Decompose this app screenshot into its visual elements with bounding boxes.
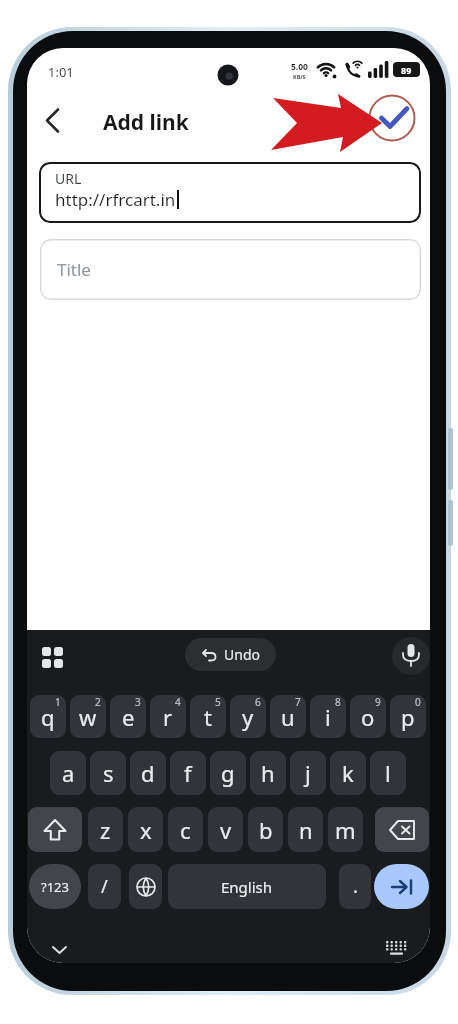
staticText: Add link bbox=[103, 108, 189, 137]
button[interactable] bbox=[368, 94, 416, 142]
staticText: English bbox=[221, 877, 273, 897]
button[interactable]: c bbox=[168, 807, 203, 852]
button[interactable]: s bbox=[90, 751, 126, 795]
button[interactable]: e bbox=[110, 695, 146, 738]
staticText: Undo bbox=[224, 645, 260, 664]
button[interactable]: d bbox=[130, 751, 166, 795]
staticText: KB/S bbox=[293, 73, 306, 80]
button[interactable] bbox=[44, 937, 74, 963]
staticText: d bbox=[141, 758, 155, 788]
button[interactable] bbox=[37, 105, 69, 137]
button[interactable] bbox=[374, 864, 429, 909]
button[interactable]: t bbox=[190, 695, 226, 738]
staticText: 2 bbox=[95, 695, 101, 709]
staticText: m bbox=[335, 815, 356, 845]
button[interactable]: h bbox=[250, 751, 286, 795]
button[interactable]: o bbox=[350, 695, 386, 738]
button[interactable]: u bbox=[270, 695, 306, 738]
staticText: URL bbox=[55, 169, 82, 188]
button[interactable]: Title bbox=[40, 239, 421, 300]
staticText: ?123 bbox=[41, 878, 69, 896]
staticText: q bbox=[41, 702, 55, 732]
staticText: j bbox=[305, 758, 311, 788]
staticText: p bbox=[401, 702, 415, 732]
staticText: h bbox=[261, 758, 275, 788]
staticText: a bbox=[62, 758, 75, 788]
button[interactable]: p bbox=[390, 695, 426, 738]
staticText: 7 bbox=[295, 695, 301, 709]
staticText: http://rfrcart.in bbox=[55, 188, 176, 211]
staticText: w bbox=[79, 702, 97, 732]
staticText: s bbox=[103, 758, 114, 788]
button[interactable]: b bbox=[248, 807, 283, 852]
staticText: e bbox=[122, 702, 135, 732]
button[interactable]: q bbox=[30, 695, 66, 738]
button[interactable]: m bbox=[328, 807, 363, 852]
staticText: . bbox=[353, 874, 358, 899]
staticText: l bbox=[385, 758, 391, 788]
staticText: o bbox=[361, 702, 375, 732]
staticText: c bbox=[180, 815, 191, 845]
button[interactable]: y bbox=[230, 695, 266, 738]
staticText: f bbox=[184, 758, 192, 788]
button[interactable] bbox=[129, 864, 162, 909]
staticText: k bbox=[342, 758, 354, 788]
button[interactable]: i bbox=[310, 695, 346, 738]
staticText: r bbox=[163, 702, 173, 732]
button[interactable]: Undo bbox=[185, 638, 276, 671]
button[interactable]: / bbox=[88, 864, 121, 909]
staticText: 1 bbox=[55, 695, 61, 709]
button[interactable]: v bbox=[208, 807, 243, 852]
staticText: z bbox=[100, 815, 111, 845]
button[interactable] bbox=[28, 807, 82, 852]
button[interactable] bbox=[392, 637, 430, 675]
staticText: v bbox=[220, 815, 232, 845]
button[interactable] bbox=[375, 807, 429, 852]
staticText: 5 bbox=[215, 695, 221, 709]
staticText: 89 bbox=[401, 64, 412, 76]
button[interactable]: j bbox=[290, 751, 326, 795]
button[interactable]: English bbox=[168, 864, 326, 909]
button[interactable]: r bbox=[150, 695, 186, 738]
staticText: i bbox=[325, 702, 331, 732]
button[interactable]: w bbox=[70, 695, 106, 738]
staticText: / bbox=[101, 874, 108, 899]
staticText: 6 bbox=[255, 695, 261, 709]
button[interactable]: x bbox=[128, 807, 163, 852]
staticText: y bbox=[242, 702, 254, 732]
staticText: t bbox=[204, 702, 212, 732]
staticText: 8 bbox=[335, 695, 341, 709]
button[interactable] bbox=[379, 935, 415, 963]
button[interactable]: a bbox=[50, 751, 86, 795]
button[interactable]: URL bbox=[39, 162, 421, 223]
staticText: 5.00 bbox=[291, 61, 308, 73]
staticText: b bbox=[259, 815, 273, 845]
staticText: g bbox=[221, 758, 235, 788]
button[interactable]: ?123 bbox=[29, 864, 81, 909]
staticText: 0 bbox=[415, 695, 421, 709]
button[interactable]: z bbox=[88, 807, 123, 852]
button[interactable]: l bbox=[370, 751, 406, 795]
staticText: 4 bbox=[175, 695, 181, 709]
button[interactable]: . bbox=[339, 864, 371, 909]
button[interactable]: k bbox=[330, 751, 366, 795]
staticText: 1:01 bbox=[48, 63, 74, 81]
staticText: x bbox=[140, 815, 152, 845]
staticText: n bbox=[299, 815, 313, 845]
staticText: u bbox=[281, 702, 295, 732]
staticText: Title bbox=[57, 258, 91, 281]
button[interactable]: f bbox=[170, 751, 206, 795]
button[interactable]: n bbox=[288, 807, 323, 852]
staticText: 9 bbox=[375, 695, 381, 709]
button[interactable] bbox=[33, 640, 73, 676]
staticText: 3 bbox=[135, 695, 141, 709]
button[interactable]: g bbox=[210, 751, 246, 795]
